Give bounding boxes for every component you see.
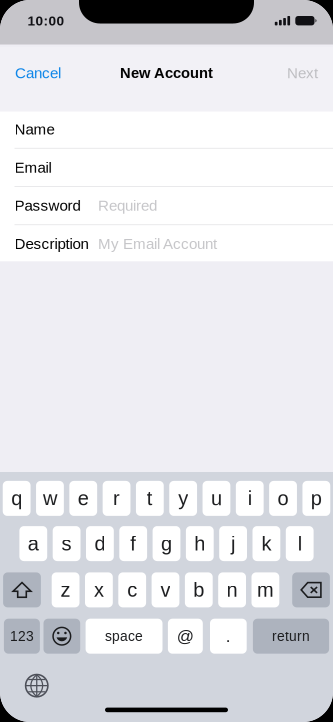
staticText: space: [105, 628, 143, 644]
button[interactable]: e: [69, 481, 97, 516]
button[interactable]: j: [219, 526, 247, 561]
button[interactable]: a: [19, 526, 47, 561]
staticText: Email: [14, 159, 51, 176]
button[interactable]: p: [302, 481, 330, 516]
staticText: s: [62, 532, 72, 555]
staticText: f: [130, 532, 136, 555]
staticText: h: [194, 532, 205, 555]
button[interactable]: v: [152, 572, 179, 607]
button[interactable]: y: [169, 481, 197, 516]
button[interactable]: 123: [4, 619, 40, 654]
button[interactable]: b: [185, 572, 213, 607]
staticText: o: [277, 487, 288, 509]
staticText: k: [261, 532, 271, 555]
staticText: x: [94, 579, 104, 601]
staticText: w: [43, 487, 57, 509]
button[interactable]: Name: [0, 110, 333, 148]
button[interactable]: g: [153, 526, 180, 561]
staticText: c: [127, 579, 137, 601]
staticText: e: [78, 487, 89, 509]
button[interactable]: q: [3, 481, 30, 516]
staticText: v: [160, 579, 170, 601]
staticText: u: [211, 487, 222, 509]
staticText: Required: [98, 197, 157, 214]
staticText: n: [227, 579, 238, 601]
button[interactable]: Email: [0, 149, 333, 186]
button[interactable]: z: [52, 572, 79, 607]
button[interactable]: s: [53, 526, 80, 561]
staticText: Description: [14, 235, 88, 252]
staticText: g: [161, 532, 172, 555]
button[interactable]: Shift: [3, 572, 41, 607]
staticText: z: [61, 579, 71, 601]
staticText: 10:00: [27, 13, 64, 28]
staticText: y: [178, 487, 188, 509]
staticText: Cancel: [15, 65, 61, 81]
staticText: Next: [287, 65, 318, 81]
staticText: m: [257, 579, 274, 601]
button[interactable]: n: [218, 572, 246, 607]
button[interactable]: Next: [272, 53, 333, 92]
staticText: Name: [14, 121, 54, 138]
button[interactable]: Password: [0, 187, 333, 224]
button[interactable]: d: [86, 526, 114, 561]
staticText: i: [248, 487, 252, 509]
button[interactable]: @: [168, 619, 203, 654]
staticText: q: [11, 487, 22, 509]
button[interactable]: .: [210, 619, 247, 654]
button[interactable]: f: [119, 526, 147, 561]
staticText: New Account: [120, 65, 213, 81]
staticText: r: [113, 487, 120, 509]
button[interactable]: x: [85, 572, 113, 607]
button[interactable]: return: [253, 619, 329, 654]
button[interactable]: w: [36, 481, 64, 516]
staticText: b: [193, 579, 204, 601]
staticText: My Email Account: [98, 235, 217, 252]
button[interactable]: l: [286, 526, 314, 561]
staticText: t: [147, 487, 153, 509]
button[interactable]: o: [269, 481, 297, 516]
staticText: Password: [14, 197, 80, 214]
staticText: p: [311, 487, 322, 509]
button[interactable]: Emoji: [43, 619, 80, 654]
staticText: l: [298, 532, 302, 555]
button[interactable]: t: [136, 481, 164, 516]
button[interactable]: space: [86, 619, 162, 654]
button[interactable]: Cancel: [0, 53, 76, 92]
button[interactable]: r: [103, 481, 130, 516]
staticText: return: [272, 628, 310, 644]
button[interactable]: h: [186, 526, 214, 561]
button[interactable]: Description: [0, 225, 333, 262]
button[interactable]: c: [118, 572, 146, 607]
staticText: j: [231, 532, 235, 555]
staticText: .: [226, 627, 231, 646]
button[interactable]: i: [236, 481, 264, 516]
button[interactable]: Next keyboard: [26, 674, 48, 697]
staticText: d: [94, 532, 105, 555]
staticText: 123: [10, 628, 34, 644]
staticText: @: [177, 627, 194, 646]
button[interactable]: m: [251, 572, 279, 607]
button[interactable]: k: [252, 526, 280, 561]
button[interactable]: u: [202, 481, 230, 516]
staticText: a: [28, 532, 39, 555]
button[interactable]: Delete: [292, 572, 330, 607]
